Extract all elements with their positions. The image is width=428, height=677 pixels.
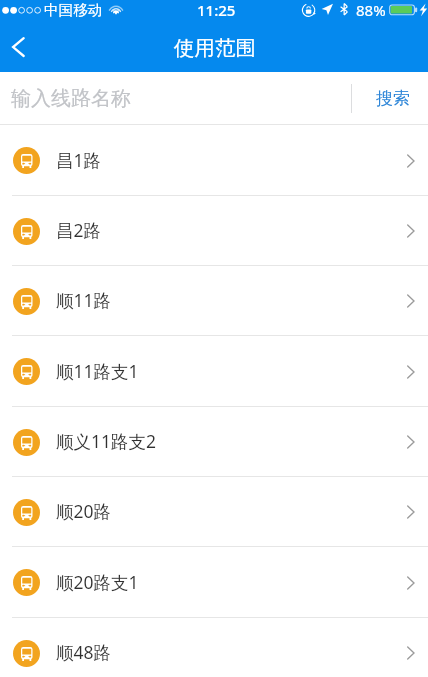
staticText: 昌2路 [56,218,102,242]
button[interactable]: 昌1路 [0,125,428,196]
staticText: 顺20路 [56,499,112,523]
staticText: 11:25 [197,0,236,20]
staticText: 使用范围 [174,35,256,61]
staticText: 顺48路 [56,640,112,664]
button[interactable]: 顺48路 [0,618,428,677]
button[interactable]: 顺11路支1 [0,336,428,407]
button[interactable]: 输入线路名称 [0,72,351,125]
staticText: 顺11路支1 [56,359,139,383]
staticText: 昌1路 [56,148,102,172]
staticText: 顺11路 [56,288,112,312]
staticText: 88% [356,0,386,20]
staticText: 输入线路名称 [11,86,131,111]
staticText: 顺20路支1 [56,570,139,594]
button[interactable]: 顺11路 [0,266,428,336]
button[interactable]: 顺20路支1 [0,547,428,618]
staticText: 顺义11路支2 [56,429,157,453]
staticText: 中国移动 [44,1,103,19]
button[interactable]: 搜索 [352,72,428,125]
button[interactable]: 昌2路 [0,196,428,266]
button[interactable]: 顺20路 [0,477,428,547]
button[interactable]: 顺义11路支2 [0,407,428,477]
staticText: 搜索 [376,88,410,109]
button[interactable]: Back [0,23,46,72]
